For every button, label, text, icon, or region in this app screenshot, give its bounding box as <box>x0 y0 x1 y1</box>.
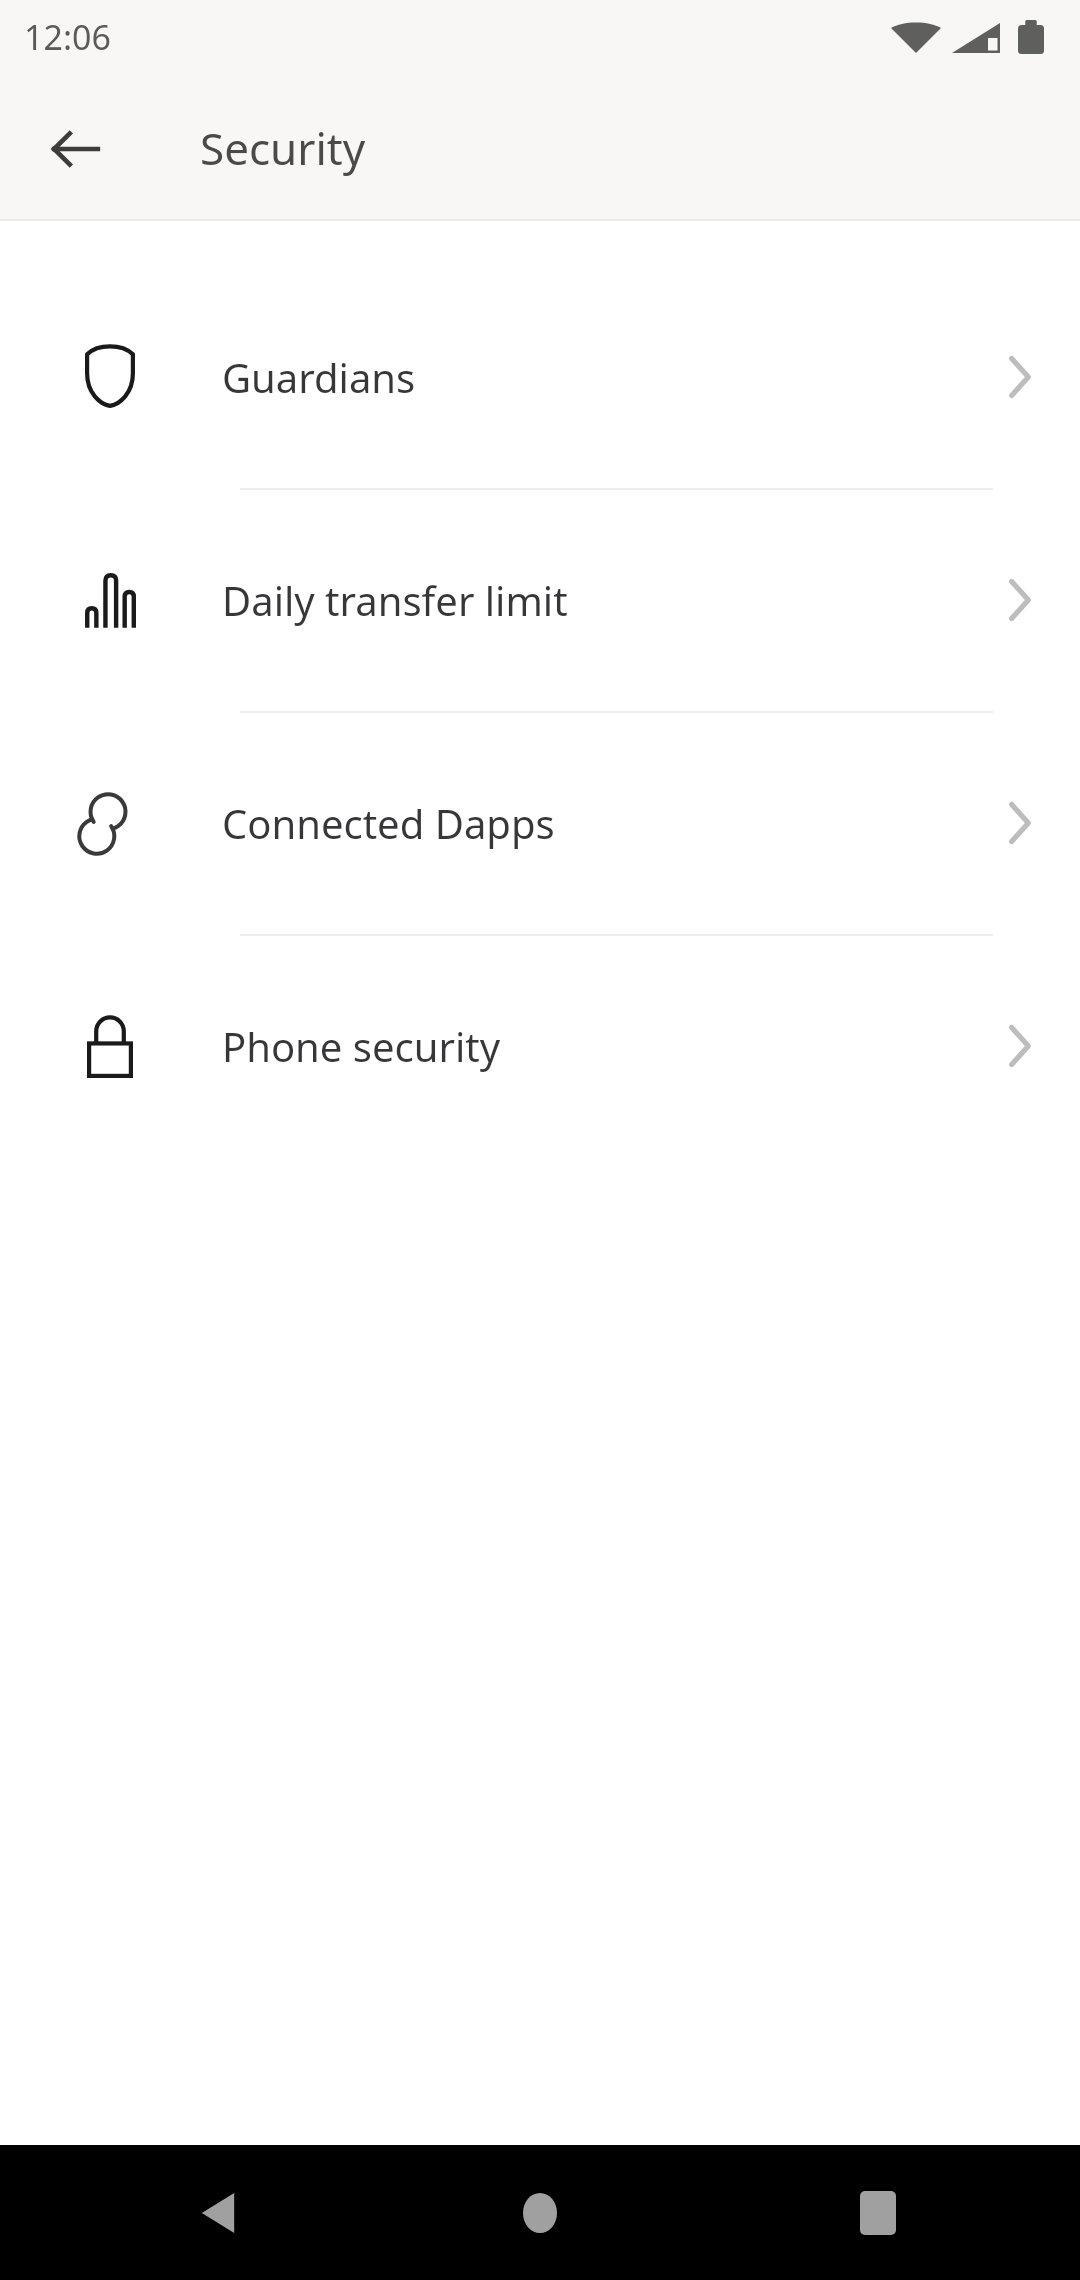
button[interactable]: Guardians <box>0 310 1080 444</box>
staticText: Phone security <box>222 1019 960 1073</box>
button[interactable]: Back <box>28 101 124 197</box>
staticText: Guardians <box>222 350 960 404</box>
button[interactable]: Connected Dapps <box>0 756 1080 890</box>
button[interactable]: Recent apps <box>818 2153 938 2273</box>
button[interactable]: Home <box>480 2153 600 2273</box>
button[interactable]: Phone security <box>0 979 1080 1113</box>
staticText: Connected Dapps <box>222 796 960 850</box>
staticText: 12:06 <box>24 14 111 60</box>
button[interactable]: Daily transfer limit <box>0 533 1080 667</box>
button[interactable]: Back <box>158 2153 278 2273</box>
staticText: Daily transfer limit <box>222 573 960 627</box>
staticText: Security <box>200 118 366 178</box>
